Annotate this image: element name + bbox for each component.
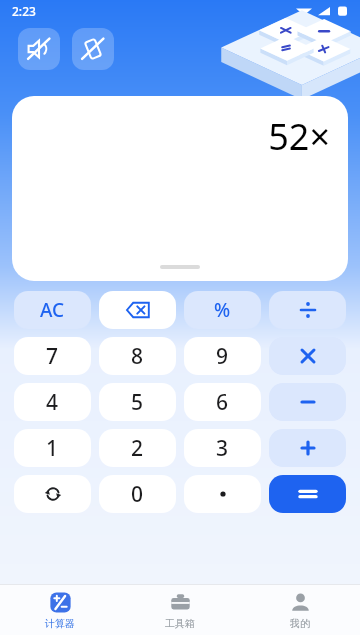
button[interactable]: Backspace — [99, 291, 176, 329]
button[interactable]: Vibrate off — [72, 28, 114, 70]
button[interactable]: 我的 — [240, 585, 360, 635]
staticText: % — [214, 297, 231, 323]
button[interactable]: 5 — [99, 383, 176, 421]
staticText: 工具箱 — [165, 617, 195, 630]
button[interactable] — [269, 383, 346, 421]
staticText: 0 — [131, 480, 144, 509]
staticText: 6 — [216, 388, 229, 417]
button[interactable] — [269, 337, 346, 375]
button[interactable]: 7 — [14, 337, 91, 375]
staticText: 5 — [131, 388, 144, 417]
button[interactable] — [269, 291, 346, 329]
staticText: AC — [40, 297, 65, 323]
button[interactable]: Mute — [18, 28, 60, 70]
staticText: 计算器 — [45, 617, 75, 630]
button[interactable]: 6 — [184, 383, 261, 421]
button[interactable]: AC — [14, 291, 91, 329]
button[interactable] — [269, 475, 346, 513]
button[interactable]: 计算器 — [0, 585, 120, 635]
button[interactable]: 4 — [14, 383, 91, 421]
staticText: 7 — [46, 342, 59, 371]
staticText: 1 — [46, 434, 59, 463]
button[interactable] — [184, 475, 261, 513]
button[interactable]: % — [184, 291, 261, 329]
staticText: 4 — [46, 388, 59, 417]
button[interactable]: 3 — [184, 429, 261, 467]
button[interactable]: 工具箱 — [120, 585, 240, 635]
button[interactable]: 2 — [99, 429, 176, 467]
button[interactable]: 8 — [99, 337, 176, 375]
staticText: 8 — [131, 342, 144, 371]
staticText: 3 — [216, 434, 229, 463]
staticText: 2:23 — [12, 3, 36, 19]
button[interactable]: 9 — [184, 337, 261, 375]
button[interactable]: 0 — [99, 475, 176, 513]
button[interactable]: 1 — [14, 429, 91, 467]
button[interactable]: 52× — [12, 96, 348, 281]
button[interactable] — [269, 429, 346, 467]
button[interactable]: Convert — [14, 475, 91, 513]
staticText: 我的 — [290, 617, 310, 630]
staticText: 2 — [131, 434, 144, 463]
staticText: 52× — [268, 112, 330, 161]
staticText: 9 — [216, 342, 229, 371]
